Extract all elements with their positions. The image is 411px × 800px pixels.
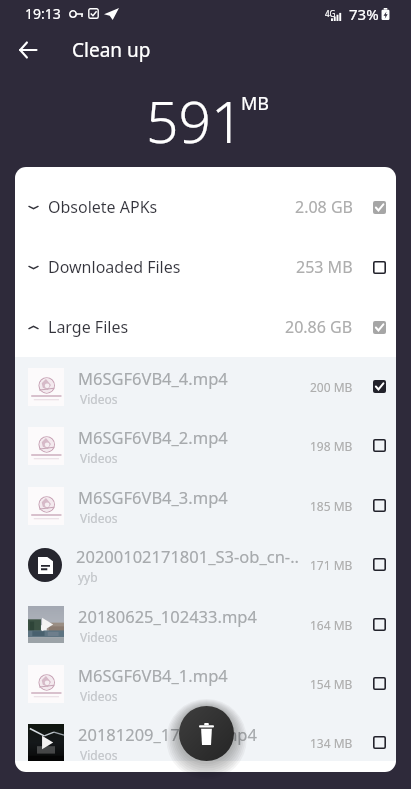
staticText: 134 MB xyxy=(310,735,353,751)
staticText: 185 MB xyxy=(310,498,353,514)
staticText: Obsolete APKs xyxy=(48,196,158,218)
staticText: Videos xyxy=(80,629,118,645)
staticText: Large Files xyxy=(48,316,129,338)
button[interactable]: Downloaded Files xyxy=(15,237,396,297)
staticText: M6SGF6VB4_2.mp4 xyxy=(78,426,228,448)
button[interactable]: M6SGF6VB4_3.mp4 xyxy=(15,476,396,535)
staticText: 19:13 xyxy=(25,4,61,23)
staticText: Videos xyxy=(80,688,118,704)
staticText: 171 MB xyxy=(310,557,353,573)
staticText: 73% xyxy=(349,4,379,24)
staticText: 20180625_102433.mp4 xyxy=(78,605,257,627)
staticText: 164 MB xyxy=(310,617,353,633)
button[interactable]: Obsolete APKs xyxy=(15,177,396,237)
staticText: M6SGF6VB4_3.mp4 xyxy=(78,486,228,508)
staticText: 20181209_174212.mp4 xyxy=(78,723,257,745)
staticText: 4G xyxy=(325,8,336,19)
staticText: Clean up xyxy=(72,37,151,63)
staticText: Videos xyxy=(80,391,118,407)
button[interactable]: 20180625_102433.mp4 xyxy=(15,595,396,654)
button[interactable]: 20200102171801_S3-ob_cn-.. xyxy=(15,535,396,594)
button[interactable]: M6SGF6VB4_2.mp4 xyxy=(15,416,396,475)
button[interactable]: M6SGF6VB4_4.mp4 xyxy=(15,357,396,416)
staticText: Videos xyxy=(80,510,118,526)
button[interactable]: 20181209_174212.mp4 xyxy=(15,713,396,772)
staticText: Videos xyxy=(80,747,118,763)
staticText: 20200102171801_S3-ob_cn-.. xyxy=(76,545,299,567)
staticText: Videos xyxy=(80,450,118,466)
staticText: 591 xyxy=(146,82,244,160)
staticText: Downloaded Files xyxy=(48,256,181,278)
staticText: 200 MB xyxy=(310,379,353,395)
staticText: 2.08 GB xyxy=(295,196,353,218)
staticText: MB xyxy=(241,91,270,116)
button[interactable]: Back xyxy=(11,33,45,67)
staticText: 253 MB xyxy=(296,256,353,278)
staticText: M6SGF6VB4_4.mp4 xyxy=(78,367,228,389)
staticText: 20.86 GB xyxy=(285,316,353,338)
staticText: yyb xyxy=(78,569,98,585)
staticText: M6SGF6VB4_1.mp4 xyxy=(78,664,228,686)
button[interactable]: M6SGF6VB4_1.mp4 xyxy=(15,654,396,713)
button[interactable]: Delete xyxy=(179,706,234,761)
staticText: 198 MB xyxy=(310,438,353,454)
button[interactable]: Large Files xyxy=(15,297,396,357)
staticText: 154 MB xyxy=(310,676,353,692)
